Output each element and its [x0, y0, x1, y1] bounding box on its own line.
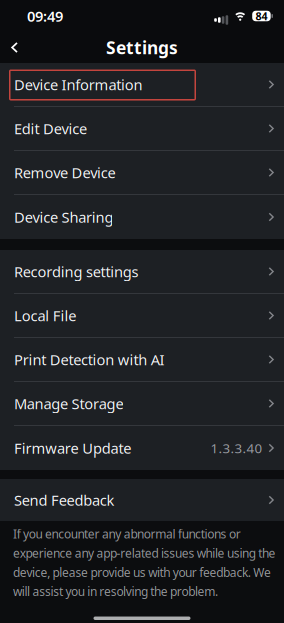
button[interactable]: Recording settings	[0, 250, 284, 294]
button[interactable]: Remove Device	[0, 151, 284, 195]
staticText: Manage Storage	[14, 394, 123, 413]
staticText: Recording settings	[14, 262, 139, 281]
staticText: Device Information	[14, 75, 143, 94]
staticText: Local File	[14, 306, 76, 325]
button[interactable]: Device Sharing	[0, 195, 284, 239]
button[interactable]: Manage Storage	[0, 382, 284, 426]
staticText: will assist you in resolving the problem…	[13, 583, 218, 599]
button[interactable]: Firmware Update	[0, 426, 284, 470]
staticText: Print Detection with AI	[14, 350, 165, 369]
button[interactable]: Back	[0, 36, 18, 59]
button[interactable]: Print Detection with AI	[0, 338, 284, 382]
staticText: Firmware Update	[14, 438, 131, 458]
button[interactable]: Device Information	[0, 63, 284, 107]
staticText: experience any app-related issues while …	[13, 545, 276, 561]
staticText: Device Sharing	[14, 207, 113, 227]
staticText: Edit Device	[14, 119, 87, 138]
button[interactable]: Local File	[0, 294, 284, 338]
staticText: Remove Device	[14, 163, 116, 182]
button[interactable]: Send Feedback	[0, 479, 284, 521]
button[interactable]: Edit Device	[0, 107, 284, 151]
staticText: If you encounter any abnormal functions …	[13, 526, 241, 542]
staticText: device, please provide us with your feed…	[13, 564, 271, 580]
staticText: 09:49	[27, 6, 63, 26]
staticText: Send Feedback	[14, 490, 115, 510]
staticText: Settings	[106, 36, 178, 59]
staticText: 1.3.3.40	[210, 439, 262, 457]
staticText: 84	[255, 9, 267, 23]
